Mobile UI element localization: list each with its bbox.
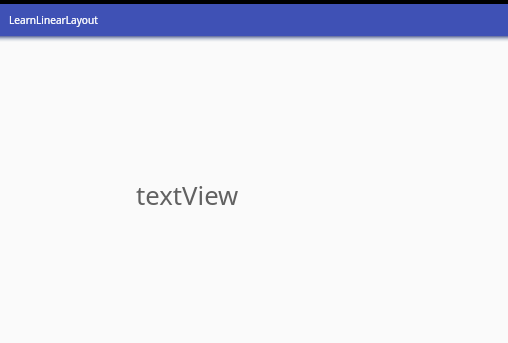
button[interactable]: textView (136, 178, 239, 213)
button[interactable]: LearnLinearLayout (0, 9, 106, 31)
